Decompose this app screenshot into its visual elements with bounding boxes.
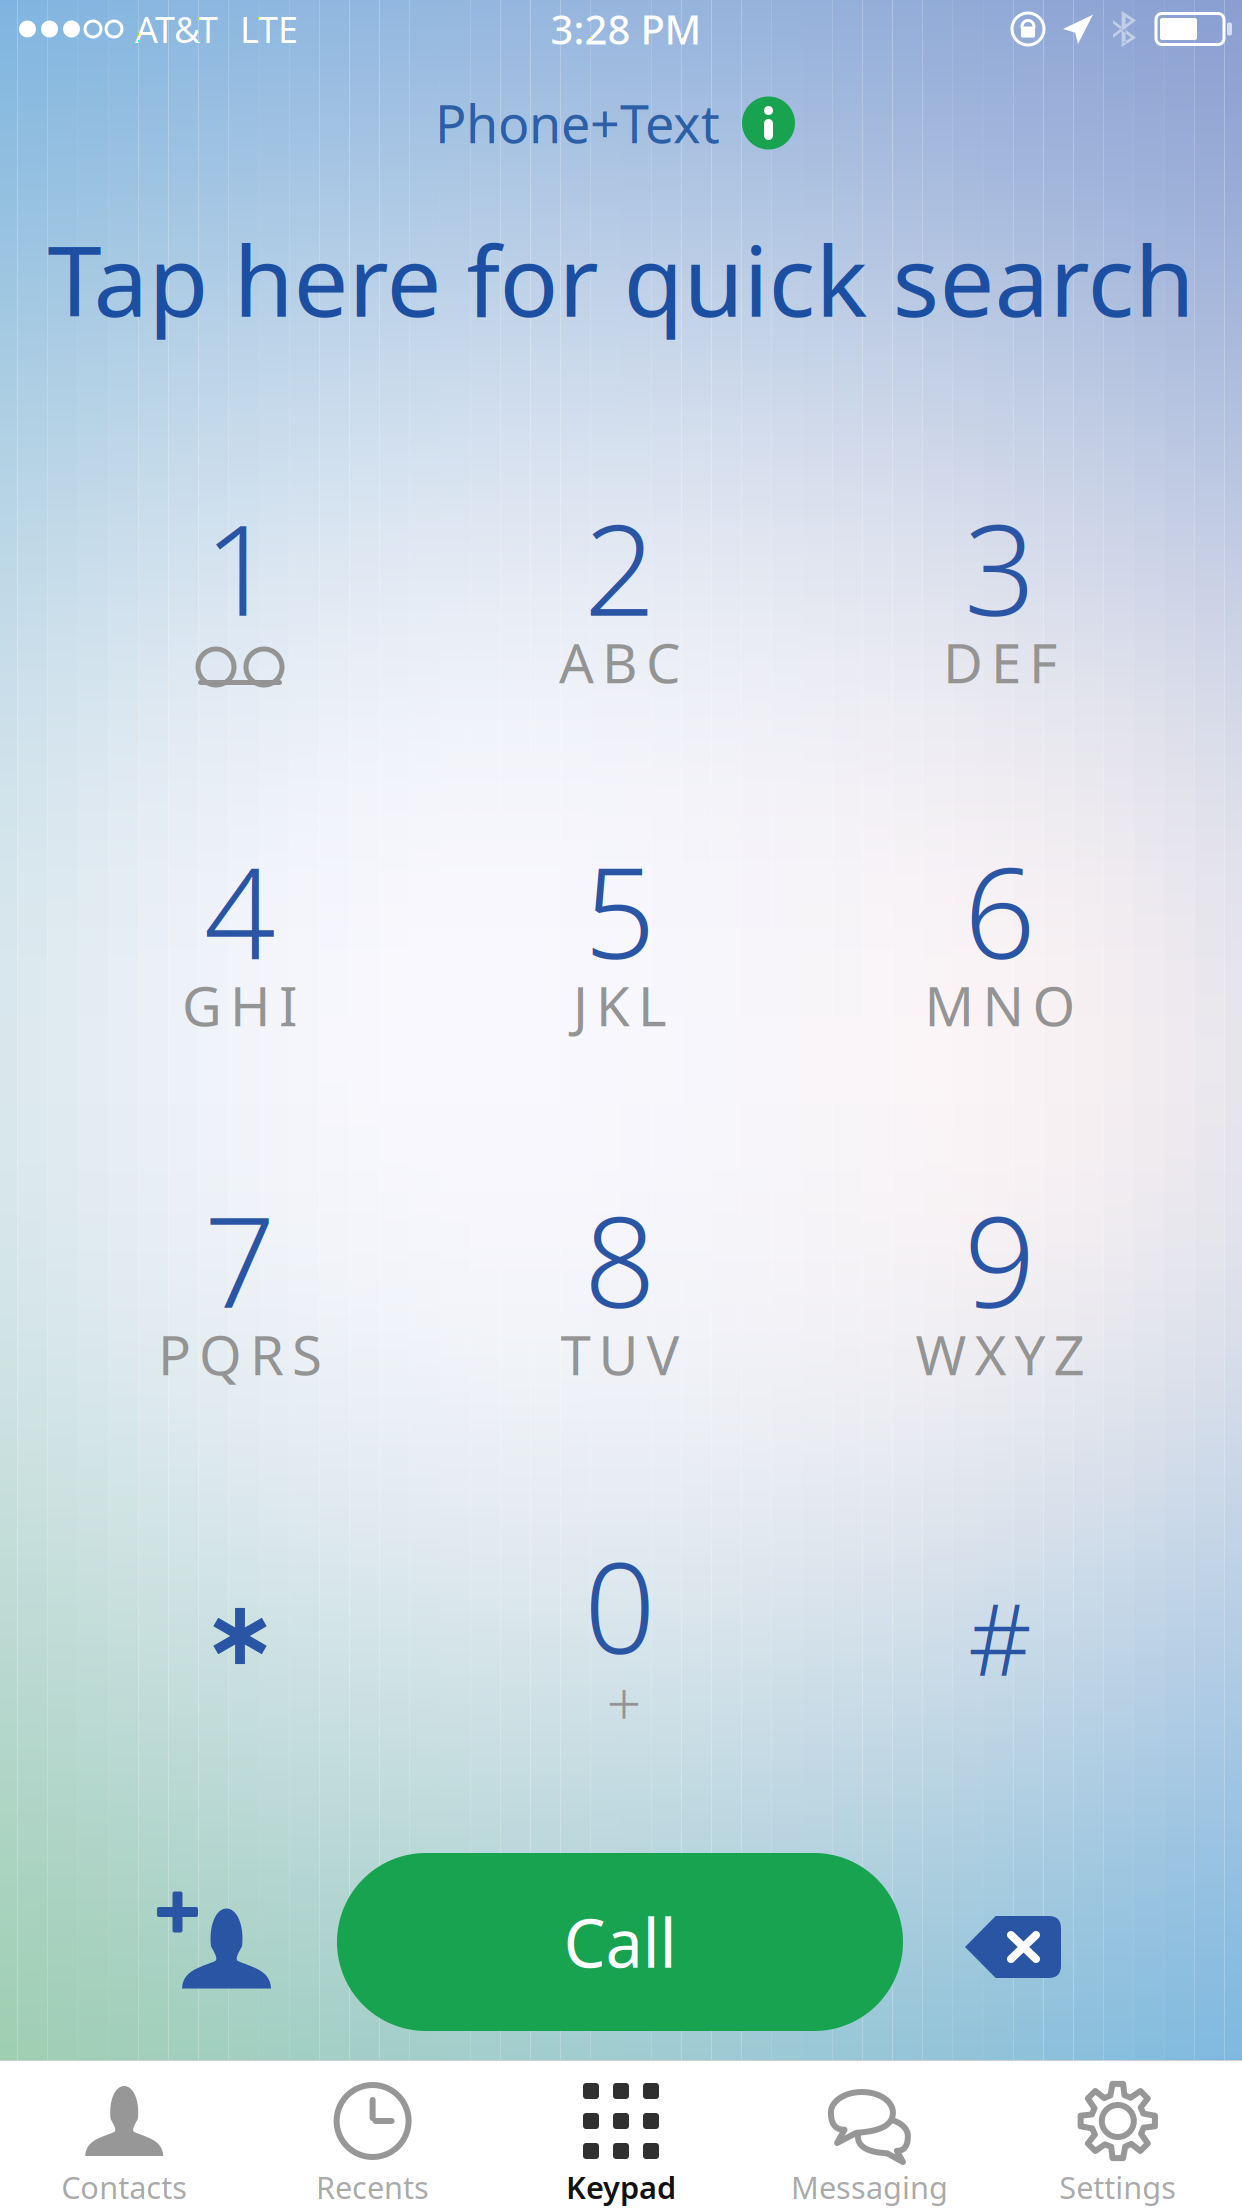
button[interactable]: Messaging [745,2061,994,2208]
staticText: 3 [964,484,1036,650]
button[interactable]: 8 TUV [430,1086,810,1432]
staticText: Messaging [791,2167,948,2207]
button[interactable]: 3 DEF [810,394,1190,740]
button[interactable]: 2 ABC [430,394,810,740]
button[interactable]: Delete [913,1872,1113,2022]
button[interactable]: Recents [248,2061,497,2208]
button[interactable]: Settings [994,2061,1242,2208]
button[interactable]: Call [337,1853,903,2031]
staticText: 5 [584,827,656,993]
staticText: ABC [559,626,681,698]
staticText: Call [563,1898,676,1986]
button[interactable]: star [50,1432,430,1778]
staticText: 3:28 PM [550,2,701,55]
staticText: 9 [964,1176,1036,1342]
staticText: 4 [204,827,276,993]
staticText: AT&T [135,5,218,53]
button[interactable]: Keypad [497,2061,745,2208]
staticText: LTE [240,5,298,53]
staticText: JKL [573,969,667,1041]
button[interactable]: Tap here for quick search [0,214,1242,344]
staticText: 0 [584,1522,656,1688]
staticText: Phone+Text [435,88,720,158]
button[interactable]: 0 plus [430,1432,810,1778]
staticText: MNO [924,969,1075,1041]
button[interactable]: 5 JKL [430,737,810,1083]
button[interactable]: Add Contact [94,1865,334,2015]
staticText: 1 [204,484,276,650]
staticText: Settings [1059,2167,1176,2207]
staticText: WXYZ [915,1318,1084,1390]
staticText: 8 [584,1176,656,1342]
button[interactable]: 6 MNO [810,737,1190,1083]
staticText: # [968,1572,1032,1703]
button[interactable]: 1 [50,394,430,740]
staticText: 6 [964,827,1036,993]
staticText: Recents [316,2167,429,2207]
staticText: Tap here for quick search [47,214,1194,344]
button[interactable]: Contacts [0,2061,248,2208]
staticText: + [606,1661,641,1743]
button[interactable]: 4 GHI [50,737,430,1083]
staticText: PQRS [158,1318,322,1390]
staticText: Contacts [61,2167,187,2207]
staticText: DEF [943,626,1057,698]
button[interactable]: pound [810,1432,1190,1778]
button[interactable]: 9 WXYZ [810,1086,1190,1432]
staticText: 2 [584,484,656,650]
staticText: Keypad [566,2167,676,2207]
staticText: GHI [182,969,298,1041]
button[interactable]: Phone+Text [375,78,855,168]
staticText: TUV [560,1318,679,1390]
staticText: 7 [204,1176,276,1342]
button[interactable]: 7 PQRS [50,1086,430,1432]
